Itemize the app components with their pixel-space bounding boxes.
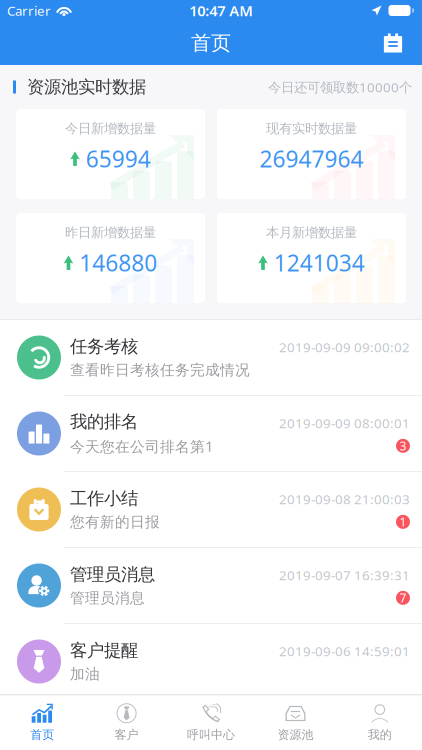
staticText: 查看昨日考核任务完成情况 — [70, 361, 250, 379]
button[interactable]: 客户 — [84, 695, 169, 750]
staticText: 昨日新增数据量 — [65, 224, 156, 241]
staticText: 26947964 — [259, 144, 363, 174]
staticText: 工作小结 — [70, 488, 138, 509]
button[interactable]: 任务列表 — [371, 22, 415, 64]
staticText: 今日新增数据量 — [65, 120, 156, 137]
button[interactable]: 呼叫中心 — [169, 695, 253, 750]
staticText: 7 — [399, 590, 406, 606]
button[interactable]: 客户提醒 — [0, 624, 422, 700]
button[interactable]: 首页 — [0, 695, 84, 750]
staticText: 2019-09-07 16:39:31 — [279, 566, 410, 584]
staticText: 我的排名 — [70, 411, 138, 432]
button[interactable]: 我的排名 — [0, 396, 422, 472]
button[interactable]: 我的 — [338, 695, 422, 750]
staticText: 加油 — [70, 665, 100, 683]
staticText: 10:47 AM — [189, 1, 253, 20]
staticText: 您有新的日报 — [70, 513, 160, 531]
staticText: 2019-09-08 21:00:03 — [279, 490, 410, 508]
staticText: 客户 — [115, 727, 139, 742]
staticText: 客户提醒 — [70, 640, 138, 661]
staticText: 管理员消息 — [70, 589, 145, 607]
staticText: 资源池 — [277, 727, 313, 742]
button[interactable]: 资源池 — [253, 695, 338, 750]
staticText: 资源池实时数据 — [27, 76, 146, 98]
staticText: 我的 — [368, 727, 392, 742]
staticText: 现有实时数据量 — [266, 120, 357, 137]
staticText: 2019-09-06 14:59:01 — [279, 642, 410, 660]
staticText: 2019-09-09 09:00:02 — [279, 338, 410, 356]
staticText: Carrier — [7, 2, 51, 19]
button[interactable]: 管理员消息 — [0, 548, 422, 624]
staticText: 首页 — [30, 727, 54, 742]
staticText: 1 — [399, 514, 406, 530]
staticText: 今日还可领取数10000个 — [268, 78, 412, 96]
staticText: 管理员消息 — [70, 564, 155, 585]
staticText: 1241034 — [274, 248, 365, 278]
staticText: 呼叫中心 — [187, 727, 235, 742]
staticText: 146880 — [79, 248, 157, 278]
button[interactable]: 工作小结 — [0, 472, 422, 548]
staticText: 本月新增数据量 — [266, 224, 357, 241]
staticText: 首页 — [191, 31, 231, 55]
staticText: 65994 — [86, 144, 151, 174]
staticText: 2019-09-09 08:00:01 — [279, 414, 410, 432]
staticText: 今天您在公司排名第1 — [70, 436, 213, 456]
button[interactable]: 任务考核 — [0, 320, 422, 396]
staticText: 任务考核 — [70, 336, 138, 357]
staticText: 3 — [399, 438, 406, 454]
